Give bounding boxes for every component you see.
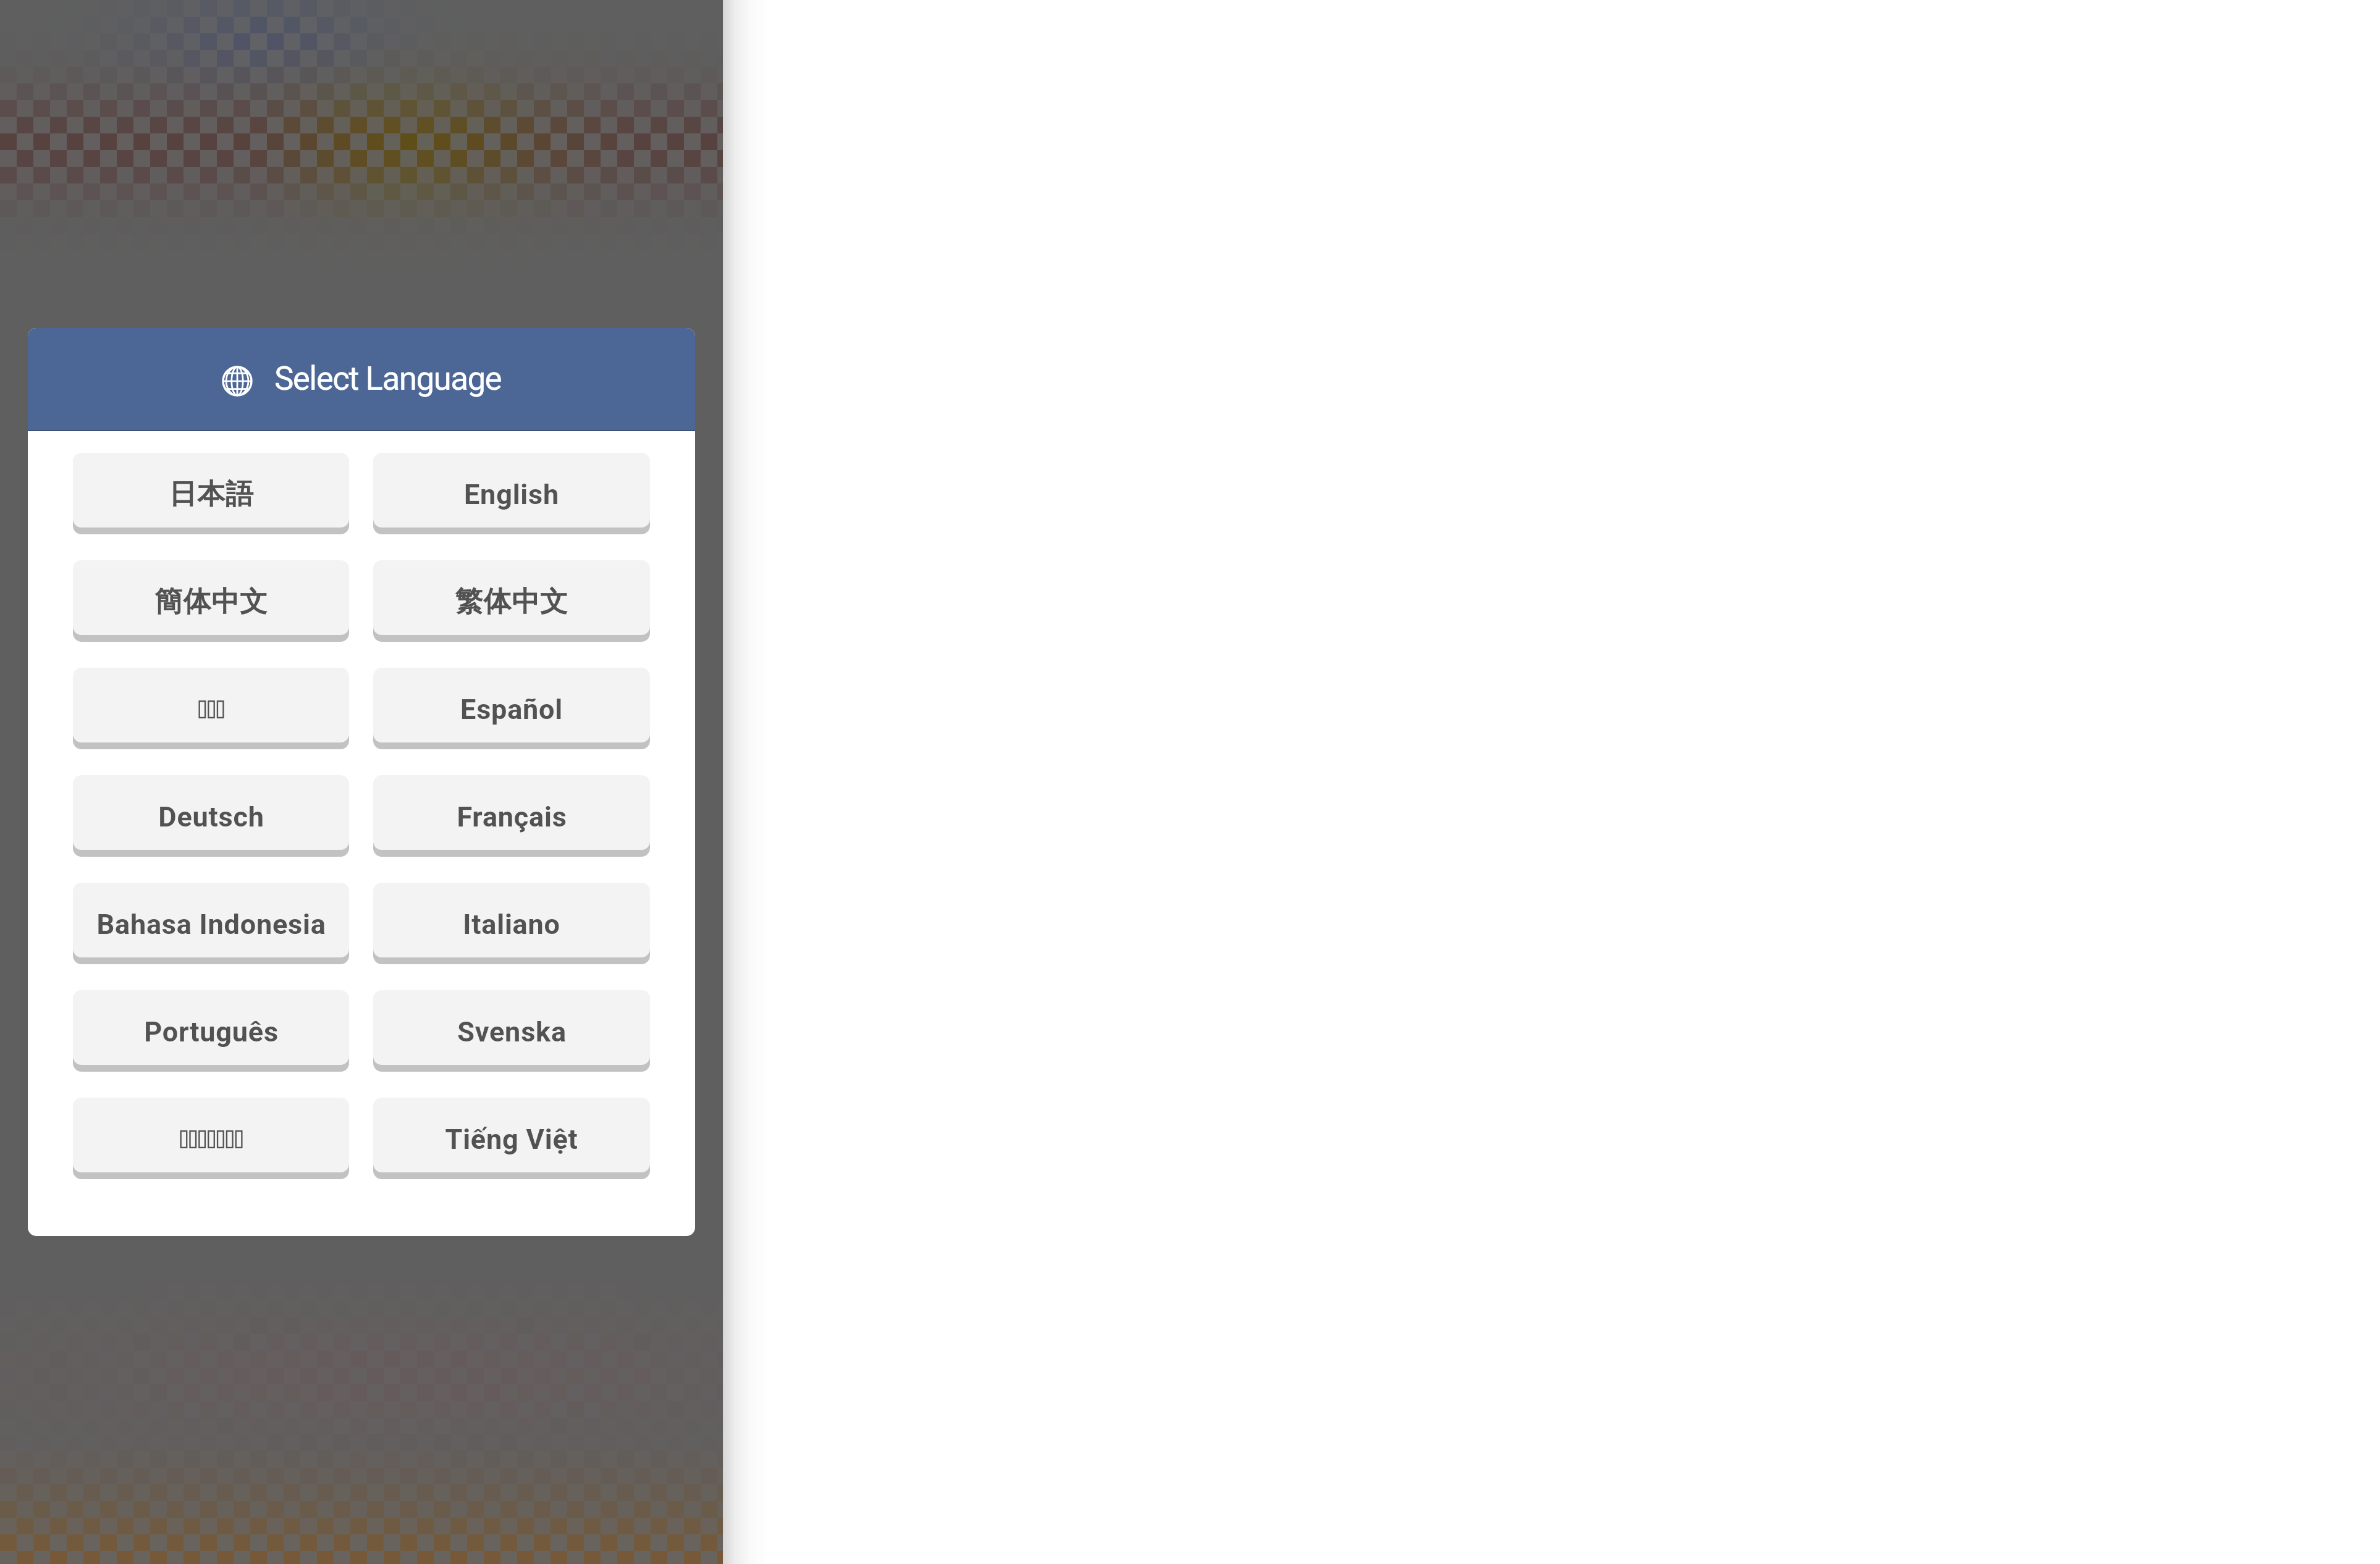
button[interactable]: 簡体中文 — [73, 560, 349, 635]
staticText: Español — [460, 693, 563, 726]
staticText: Select Language — [274, 359, 502, 398]
other: Language option — [198, 700, 225, 718]
button[interactable]: Italiano — [373, 883, 650, 957]
staticText: 簡体中文 — [154, 584, 268, 620]
other: Language — [221, 365, 253, 397]
button[interactable]: Português — [73, 990, 349, 1065]
staticText: Tiếng Việt — [445, 1123, 578, 1156]
button[interactable]: Deutsch — [73, 775, 349, 850]
button[interactable]: 日本語 — [73, 453, 349, 528]
button[interactable]: Tiếng Việt — [373, 1098, 650, 1172]
button[interactable]: Svenska — [373, 990, 650, 1065]
button[interactable]: Language option — [73, 1098, 349, 1172]
staticText: 繁体中文 — [455, 584, 568, 620]
other: Language option — [179, 1130, 243, 1148]
staticText: Svenska — [457, 1015, 567, 1048]
staticText: English — [464, 478, 559, 511]
staticText: Deutsch — [158, 801, 264, 833]
staticText: Português — [144, 1015, 279, 1048]
button[interactable]: 繁体中文 — [373, 560, 650, 635]
button[interactable]: Español — [373, 668, 650, 742]
staticText: Bahasa Indonesia — [96, 908, 326, 941]
button[interactable]: Language option — [73, 668, 349, 742]
button[interactable]: Français — [373, 775, 650, 850]
staticText: Italiano — [463, 908, 560, 941]
button[interactable]: Bahasa Indonesia — [73, 883, 349, 957]
staticText: 日本語 — [169, 477, 254, 512]
staticText: Français — [457, 801, 567, 833]
button[interactable]: English — [373, 453, 650, 528]
